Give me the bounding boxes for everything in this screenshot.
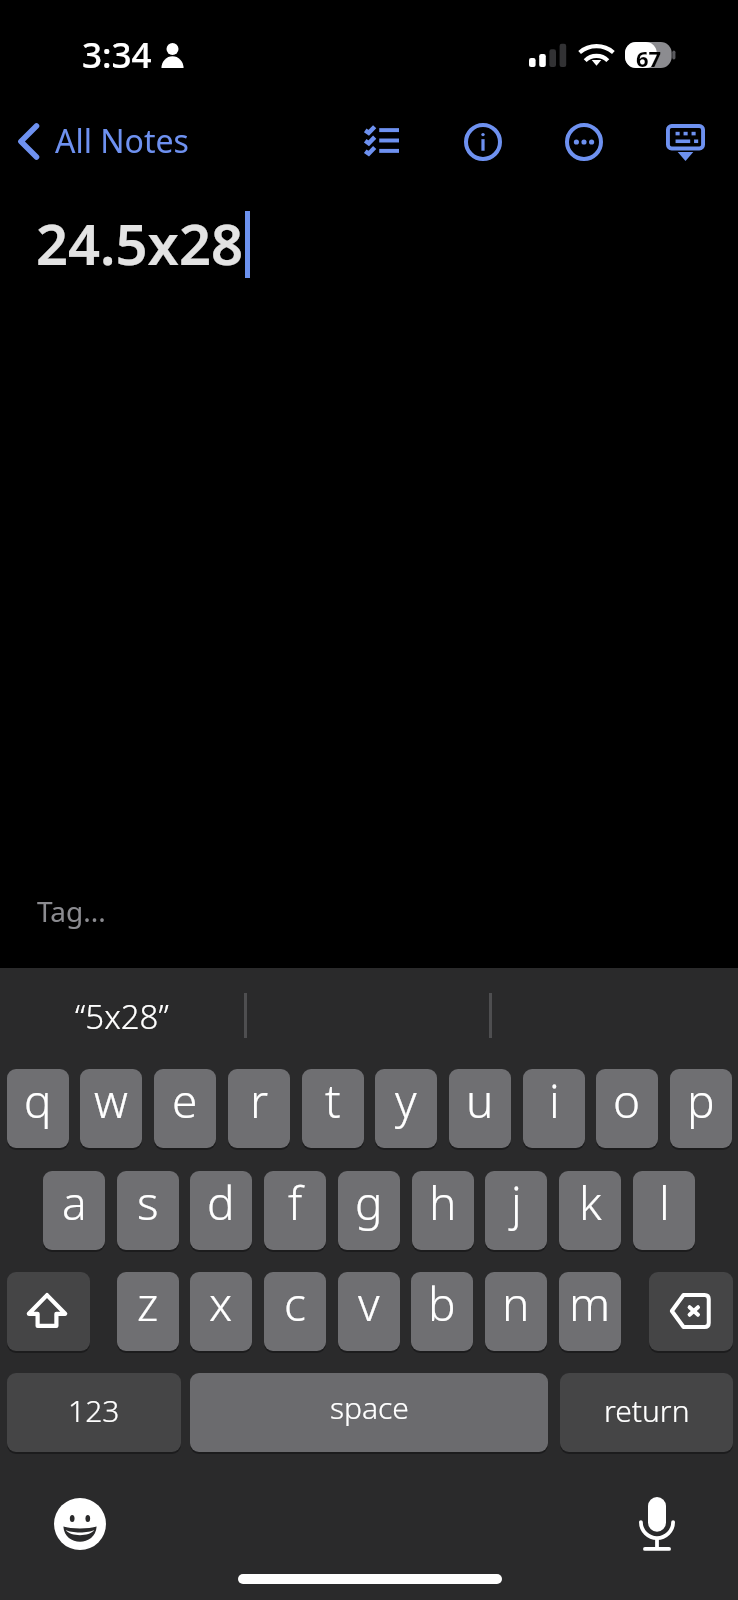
button[interactable]: Checklist (348, 112, 414, 172)
staticText: return (604, 1390, 690, 1431)
staticText: l (659, 1171, 670, 1234)
staticText: b (428, 1272, 456, 1335)
button[interactable]: r (228, 1069, 290, 1148)
staticText: g (355, 1171, 383, 1234)
staticText: 67 (636, 43, 662, 69)
button[interactable]: x (190, 1272, 252, 1351)
button[interactable]: u (449, 1069, 511, 1148)
button[interactable]: e (154, 1069, 216, 1148)
staticText: v (358, 1272, 380, 1335)
button[interactable]: Info (450, 112, 516, 172)
button[interactable]: Backspace (649, 1272, 733, 1351)
button[interactable]: n (485, 1272, 547, 1351)
staticText: w (94, 1069, 128, 1132)
button[interactable]: o (596, 1069, 658, 1148)
button[interactable]: m (559, 1272, 621, 1351)
button[interactable]: q (7, 1069, 69, 1148)
button[interactable]: z (117, 1272, 179, 1351)
staticText: q (24, 1069, 52, 1132)
button[interactable]: h (412, 1171, 474, 1250)
button[interactable]: return (560, 1373, 733, 1452)
staticText: 123 (68, 1390, 120, 1431)
button[interactable]: a (43, 1171, 105, 1250)
staticText: i (549, 1069, 560, 1132)
button[interactable]: All Notes (6, 107, 206, 173)
staticText: c (284, 1272, 306, 1335)
staticText: a (62, 1171, 87, 1234)
staticText: f (288, 1171, 303, 1234)
button[interactable]: y (375, 1069, 437, 1148)
button[interactable]: space (190, 1373, 548, 1452)
button[interactable]: j (485, 1171, 547, 1250)
button[interactable]: Dictation (619, 1486, 695, 1562)
button[interactable]: More options (551, 112, 617, 172)
button[interactable]: s (117, 1171, 179, 1250)
button[interactable]: k (559, 1171, 621, 1250)
button[interactable]: Hide keyboard (652, 112, 718, 172)
staticText: All Notes (55, 119, 189, 163)
button[interactable]: t (302, 1069, 364, 1148)
staticText: o (613, 1069, 641, 1132)
staticText: space (330, 1387, 409, 1428)
staticText: “5x28” (75, 994, 169, 1039)
button[interactable]: Shift (7, 1272, 90, 1351)
staticText: j (511, 1171, 522, 1234)
button[interactable]: p (670, 1069, 732, 1148)
staticText: e (172, 1069, 198, 1132)
staticText: k (579, 1171, 602, 1234)
staticText: p (687, 1069, 715, 1132)
button[interactable]: i (523, 1069, 585, 1148)
staticText: u (466, 1069, 494, 1132)
button[interactable]: g (338, 1171, 400, 1250)
button[interactable]: v (338, 1272, 400, 1351)
button[interactable]: w (80, 1069, 142, 1148)
button[interactable]: l (633, 1171, 695, 1250)
staticText: t (325, 1069, 341, 1132)
staticText: z (137, 1272, 159, 1335)
staticText: 24.5x28 (36, 205, 243, 281)
button[interactable]: d (190, 1171, 252, 1250)
staticText: y (395, 1069, 417, 1132)
button[interactable]: Emoji keyboard (40, 1486, 119, 1562)
staticText: Tag... (37, 892, 106, 930)
button[interactable]: 123 (7, 1373, 181, 1452)
button[interactable]: b (411, 1272, 473, 1351)
button[interactable]: f (264, 1171, 326, 1250)
staticText: d (207, 1171, 235, 1234)
staticText: s (137, 1171, 159, 1234)
staticText: h (429, 1171, 457, 1234)
staticText: r (250, 1069, 269, 1132)
staticText: n (502, 1272, 530, 1335)
staticText: x (209, 1272, 233, 1335)
button[interactable]: c (264, 1272, 326, 1351)
staticText: 3:34 (82, 31, 152, 79)
staticText: m (569, 1272, 611, 1335)
